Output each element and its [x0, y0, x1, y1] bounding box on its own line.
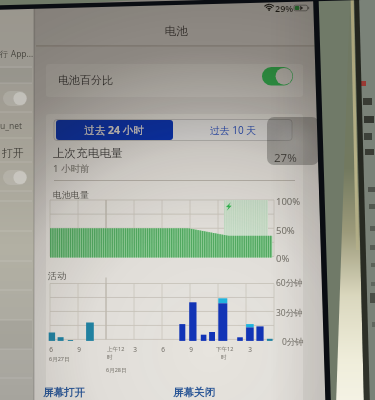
staticText: 9 [73, 345, 85, 354]
staticText: 电池百分比 [58, 73, 178, 87]
staticText: u_net [0, 120, 34, 132]
staticText: 打开 [2, 146, 36, 160]
staticText: 上午12 [107, 345, 147, 353]
staticText: 6月28日 [106, 366, 156, 374]
staticText: 电池 [140, 24, 212, 38]
staticText: 0% [276, 252, 316, 265]
staticText: 60分钟 [276, 277, 320, 289]
staticText: 下午12 [216, 345, 256, 353]
staticText: 时 [221, 354, 241, 361]
button[interactable] [173, 120, 290, 140]
staticText: 3 [129, 345, 141, 354]
staticText: 屏幕关闭 [173, 386, 233, 399]
button[interactable]: 电池百分比开关 [262, 67, 293, 86]
staticText: 30分钟 [276, 307, 320, 319]
staticText: 时 [107, 354, 127, 361]
staticText: 6月27日 [49, 355, 99, 363]
staticText: 1 小时前 [53, 162, 153, 175]
staticText: 过去 24 小时 [58, 123, 170, 137]
staticText: 27% [274, 150, 314, 166]
staticText: 6 [45, 345, 57, 354]
staticText: 电池电量 [53, 189, 143, 200]
staticText: 屏幕打开 [43, 386, 103, 399]
staticText: 活动 [48, 270, 138, 281]
staticText: 100% [276, 195, 316, 208]
staticText: 9 [185, 345, 197, 354]
staticText: 行 App… [0, 48, 34, 60]
button[interactable] [46, 140, 303, 182]
staticText: 过去 10 天 [177, 123, 289, 137]
staticText: 50% [276, 224, 316, 237]
staticText: 0分钟 [282, 336, 326, 348]
staticText: 3 [244, 345, 256, 354]
staticText: 29% [275, 2, 315, 14]
staticText: 6 [157, 345, 169, 354]
button[interactable] [56, 120, 173, 140]
staticText: 上次充电电量 [53, 146, 193, 161]
